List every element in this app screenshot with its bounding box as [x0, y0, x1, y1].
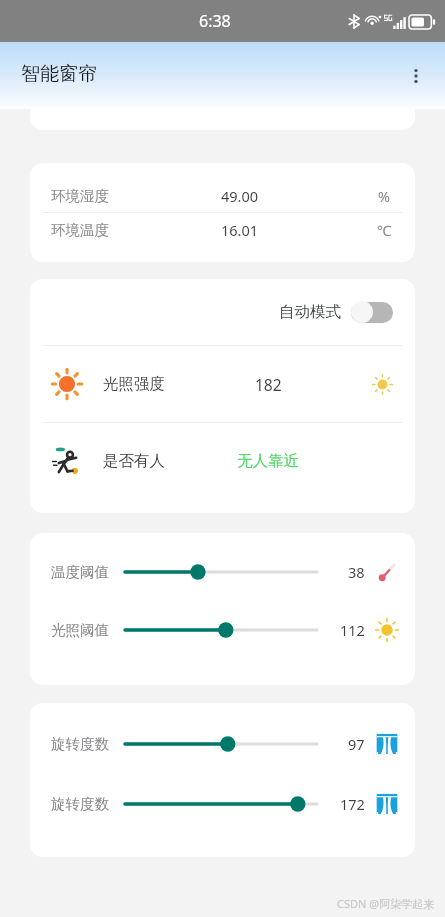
staticText: 97 — [348, 734, 365, 754]
staticText: 49.00 — [221, 186, 259, 206]
staticText: % — [378, 186, 391, 206]
staticText: 172 — [340, 794, 365, 814]
staticText: 无人靠近 — [237, 451, 299, 471]
staticText: 光照强度 — [103, 374, 165, 394]
staticText: 旋转度数 — [51, 795, 109, 813]
button[interactable] — [351, 301, 393, 323]
button[interactable]: 环境湿度 — [30, 179, 415, 212]
staticText: ℃ — [377, 220, 392, 240]
button[interactable]: More options — [395, 55, 437, 97]
staticText: 是否有人 — [103, 451, 165, 471]
button[interactable]: 温度阈值 — [30, 555, 415, 589]
button[interactable]: 环境温度 — [30, 213, 415, 246]
staticText: 16.01 — [221, 220, 259, 240]
staticText: 182 — [255, 374, 282, 395]
button[interactable]: 光照强度 — [30, 346, 415, 422]
staticText: 旋转度数 — [51, 735, 109, 753]
staticText: 智能窗帘 — [21, 62, 97, 86]
button[interactable]: 光照阈值 — [30, 613, 415, 647]
staticText: 6:38 — [199, 10, 231, 32]
staticText: 112 — [340, 620, 365, 640]
button[interactable]: 是否有人 — [30, 423, 415, 499]
staticText: 环境湿度 — [51, 187, 109, 205]
staticText: CSDN @阿柒学起来 — [337, 896, 435, 911]
staticText: 自动模式 — [279, 302, 341, 322]
staticText: 光照阈值 — [51, 621, 109, 639]
staticText: 38 — [348, 562, 365, 582]
button[interactable]: 旋转度数 — [30, 787, 415, 821]
button[interactable]: 自动模式 — [30, 279, 415, 345]
staticText: 温度阈值 — [51, 563, 109, 581]
staticText: 环境温度 — [51, 221, 109, 239]
button[interactable]: 旋转度数 — [30, 727, 415, 761]
